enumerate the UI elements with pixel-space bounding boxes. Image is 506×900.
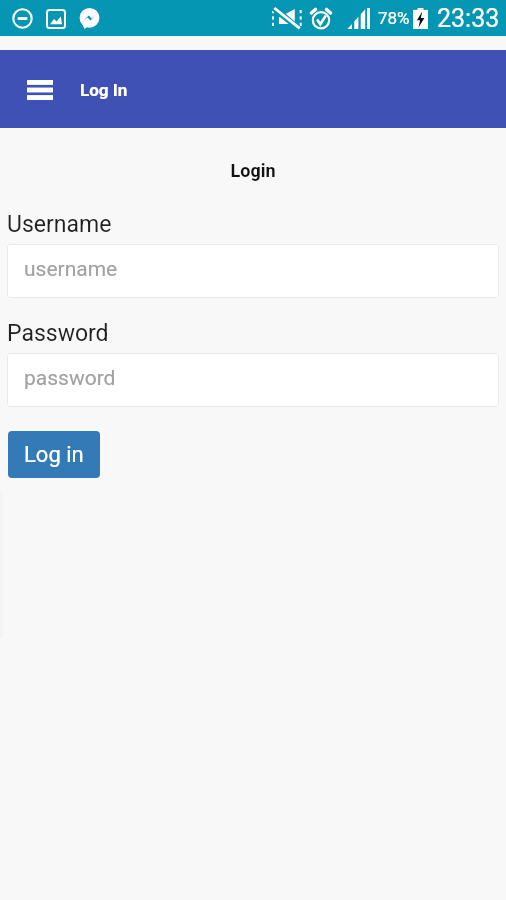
staticText: username <box>24 257 118 282</box>
button[interactable]: username <box>7 244 499 298</box>
staticText: 23:33 <box>437 4 500 33</box>
staticText: Login <box>0 160 506 181</box>
staticText: Password <box>7 320 109 347</box>
staticText: Log In <box>80 80 128 100</box>
button[interactable]: Log in <box>8 431 100 478</box>
button[interactable]: password <box>7 353 499 407</box>
staticText: Log in <box>24 442 84 468</box>
staticText: 78% <box>378 8 410 28</box>
staticText: password <box>24 366 116 391</box>
staticText: Username <box>7 211 112 238</box>
button[interactable]: Open navigation menu <box>14 68 66 112</box>
